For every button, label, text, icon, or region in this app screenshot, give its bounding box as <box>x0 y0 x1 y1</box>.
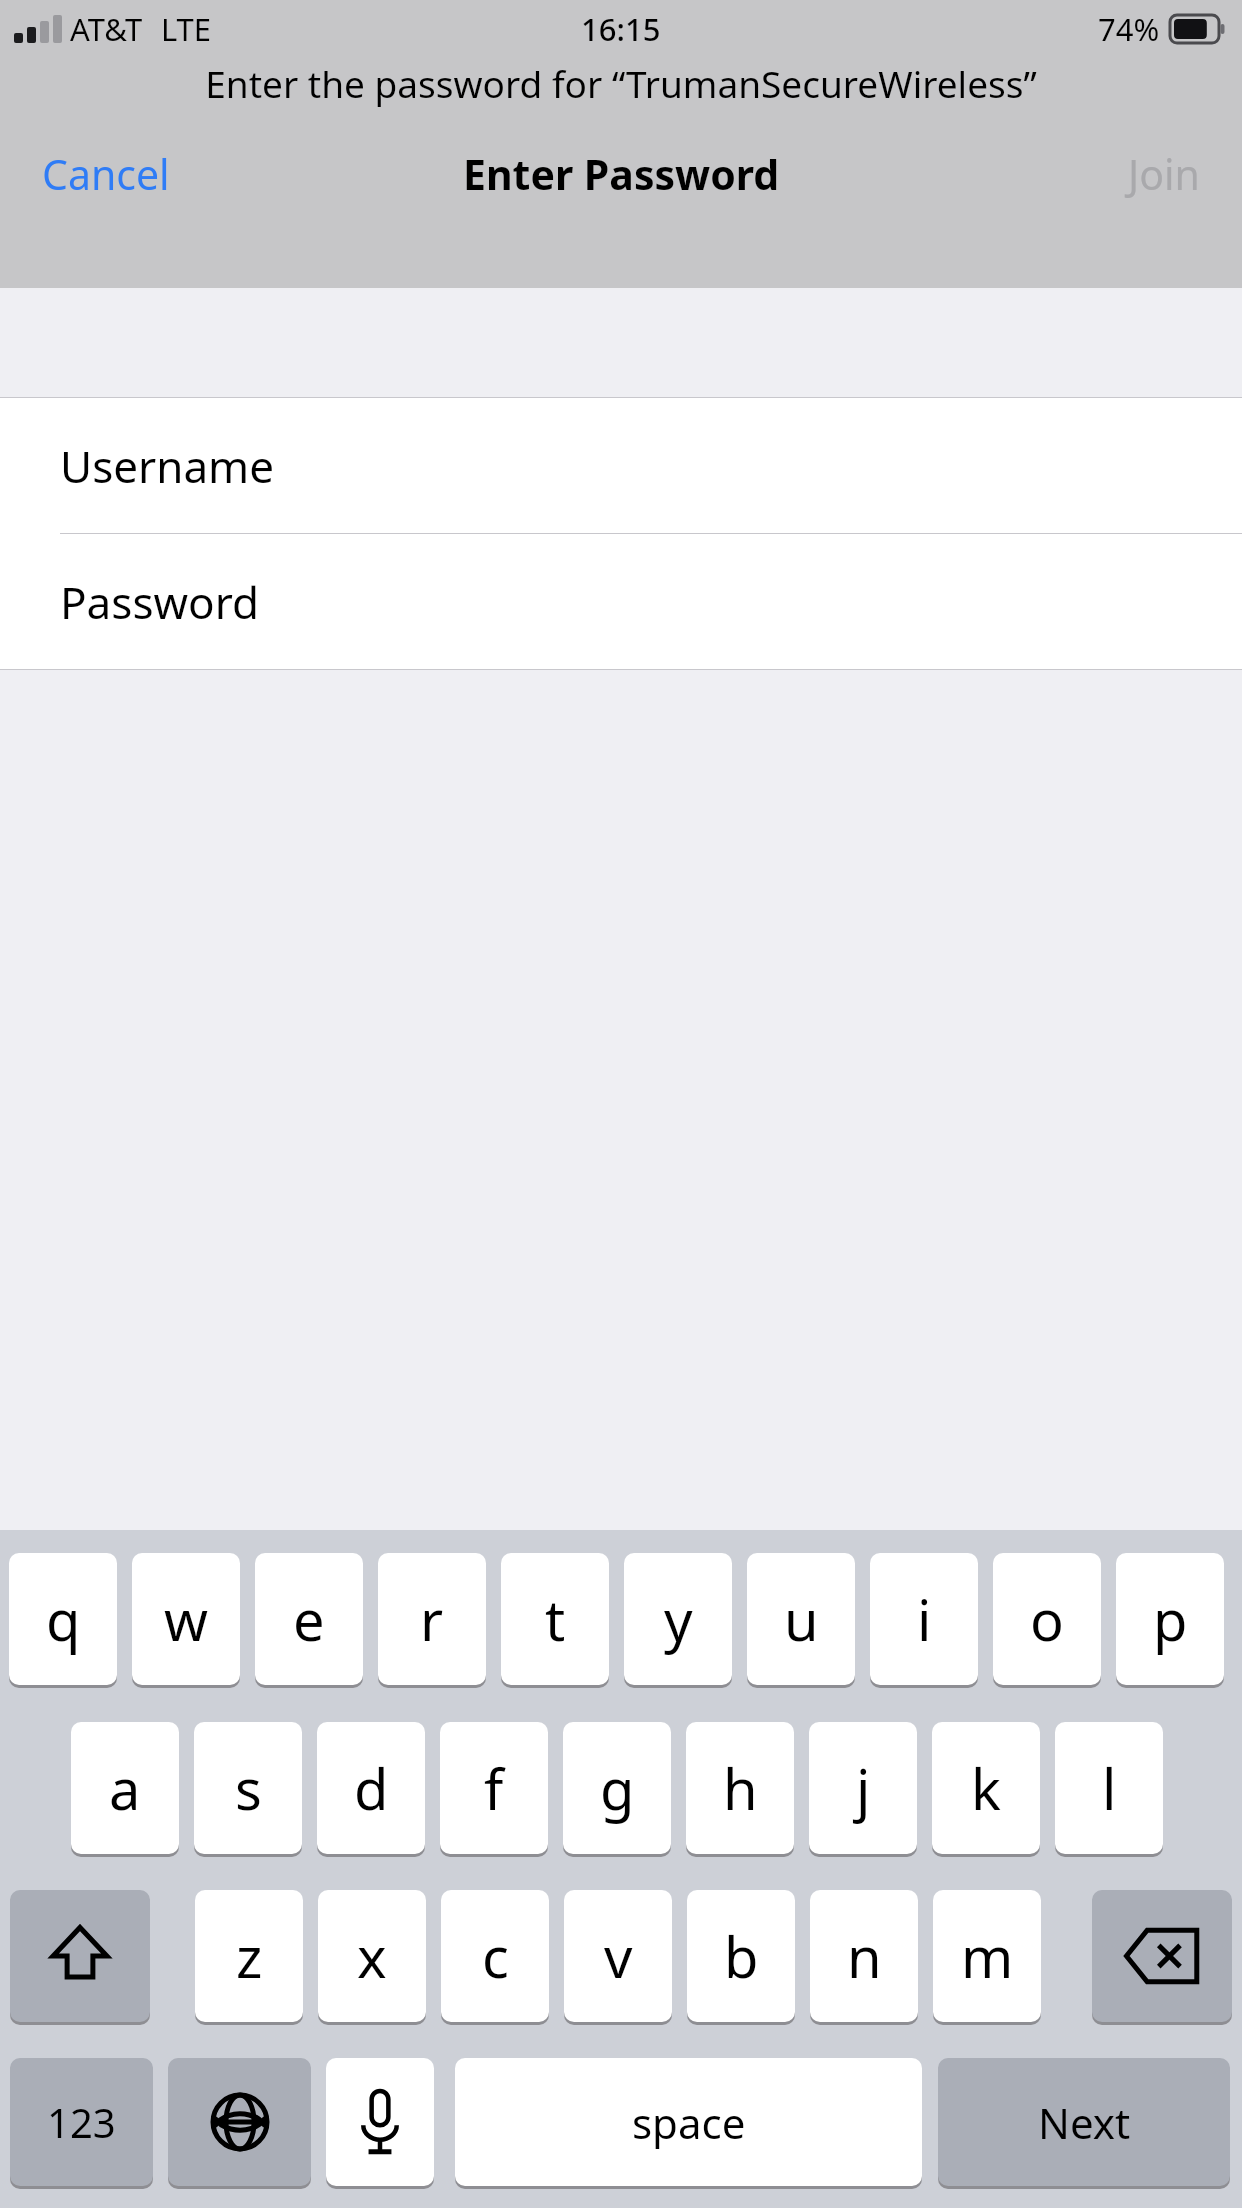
button[interactable]: Password <box>0 534 1242 669</box>
staticText: Password <box>60 572 260 632</box>
staticText: e <box>293 1581 325 1657</box>
button[interactable]: o <box>993 1553 1101 1685</box>
button[interactable]: g <box>563 1722 671 1854</box>
staticText: l <box>1102 1750 1117 1826</box>
button[interactable]: Shift <box>10 1890 150 2022</box>
staticText: Join <box>1128 146 1200 202</box>
staticText: w <box>164 1581 209 1657</box>
staticText: s <box>235 1750 262 1826</box>
button[interactable]: a <box>71 1722 179 1854</box>
staticText: f <box>484 1750 504 1826</box>
button[interactable]: Backspace <box>1092 1890 1232 2022</box>
staticText: o <box>1030 1581 1064 1657</box>
staticText: d <box>354 1750 389 1826</box>
staticText: k <box>971 1750 1001 1826</box>
staticText: n <box>847 1918 882 1994</box>
button[interactable]: i <box>870 1553 978 1685</box>
button[interactable]: h <box>686 1722 794 1854</box>
button[interactable]: s <box>194 1722 302 1854</box>
staticText: Username <box>60 436 275 496</box>
button[interactable]: u <box>747 1553 855 1685</box>
button[interactable]: k <box>932 1722 1040 1854</box>
button[interactable]: t <box>501 1553 609 1685</box>
button[interactable]: q <box>9 1553 117 1685</box>
button[interactable]: j <box>809 1722 917 1854</box>
staticText: space <box>632 2094 746 2151</box>
button[interactable]: f <box>440 1722 548 1854</box>
staticText: Enter the password for “TrumanSecureWire… <box>0 58 1242 108</box>
staticText: c <box>482 1918 509 1994</box>
staticText: p <box>1153 1581 1188 1657</box>
button[interactable]: l <box>1055 1722 1163 1854</box>
button[interactable]: Cancel <box>0 118 212 230</box>
staticText: z <box>236 1918 263 1994</box>
button[interactable]: Username <box>0 398 1242 533</box>
staticText: t <box>545 1581 566 1657</box>
button[interactable]: space <box>455 2058 922 2186</box>
button[interactable]: v <box>564 1890 672 2022</box>
staticText: v <box>604 1918 633 1994</box>
button[interactable]: e <box>255 1553 363 1685</box>
staticText: x <box>357 1918 387 1994</box>
staticText: y <box>664 1581 693 1657</box>
staticText: 123 <box>47 2095 116 2149</box>
button[interactable]: m <box>933 1890 1041 2022</box>
button[interactable]: c <box>441 1890 549 2022</box>
button[interactable]: r <box>378 1553 486 1685</box>
staticText: u <box>784 1581 819 1657</box>
button[interactable]: Dictate <box>326 2058 434 2186</box>
staticText: Next <box>1038 2094 1131 2151</box>
staticText: h <box>723 1750 758 1826</box>
staticText: AT&T <box>70 8 143 50</box>
staticText: a <box>109 1750 141 1826</box>
button[interactable]: w <box>132 1553 240 1685</box>
button[interactable]: Join <box>1086 118 1242 230</box>
staticText: i <box>917 1581 932 1657</box>
button[interactable]: n <box>810 1890 918 2022</box>
button[interactable]: z <box>195 1890 303 2022</box>
staticText: g <box>600 1750 635 1826</box>
staticText: Cancel <box>42 146 170 202</box>
staticText: b <box>724 1918 759 1994</box>
button[interactable]: d <box>317 1722 425 1854</box>
staticText: m <box>961 1918 1014 1994</box>
staticText: q <box>46 1581 81 1657</box>
button[interactable]: Next <box>938 2058 1230 2186</box>
button[interactable]: 123 <box>10 2058 153 2186</box>
button[interactable]: b <box>687 1890 795 2022</box>
staticText: r <box>420 1581 444 1657</box>
staticText: j <box>856 1750 871 1826</box>
staticText: 74% <box>1098 8 1160 50</box>
button[interactable]: p <box>1116 1553 1224 1685</box>
staticText: 16:15 <box>581 8 661 50</box>
button[interactable]: y <box>624 1553 732 1685</box>
staticText: LTE <box>161 8 212 50</box>
staticText: Enter Password <box>463 146 780 202</box>
button[interactable]: Switch keyboard <box>168 2058 311 2186</box>
button[interactable]: x <box>318 1890 426 2022</box>
